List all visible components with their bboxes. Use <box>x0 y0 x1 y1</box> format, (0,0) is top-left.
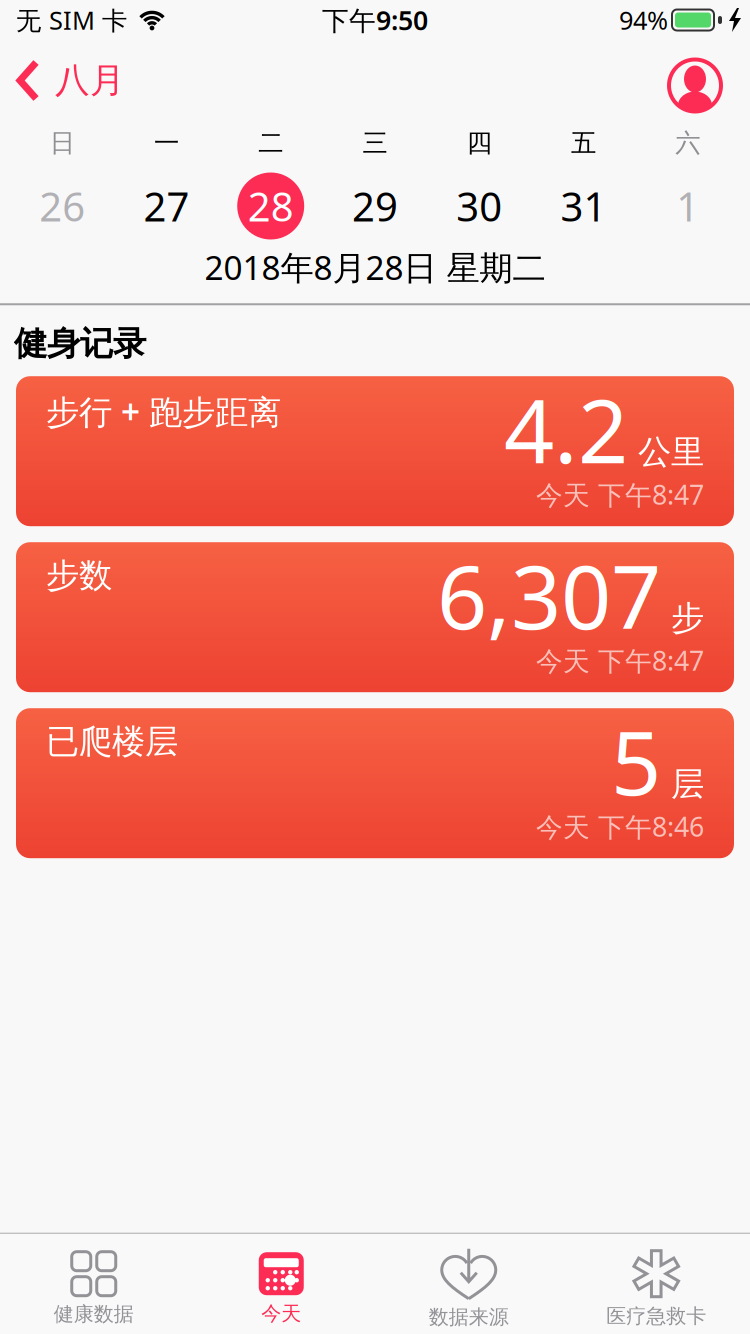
button[interactable]: 30 <box>427 173 531 239</box>
staticText: 28 <box>248 179 294 232</box>
button[interactable] <box>669 54 750 106</box>
staticText: 六 <box>675 127 700 158</box>
staticText: 6,307 <box>437 537 661 654</box>
staticText: 健康数据 <box>54 1302 134 1326</box>
staticText: 31 <box>561 179 607 232</box>
button[interactable]: 27 <box>114 173 219 239</box>
staticText: 日 <box>50 127 75 158</box>
staticText: 30 <box>456 179 502 232</box>
staticText: 今天 下午8:47 <box>536 643 704 678</box>
staticText: 今天 下午8:46 <box>536 809 704 844</box>
staticText: 健身记录 <box>14 323 146 364</box>
button[interactable]: 28 <box>219 173 323 239</box>
staticText: 1 <box>676 179 699 232</box>
button[interactable]: 健康数据 <box>0 1252 187 1326</box>
staticText: 步 <box>671 598 704 639</box>
staticText: 层 <box>671 764 704 805</box>
staticText: 数据来源 <box>429 1305 509 1329</box>
button[interactable]: 步数 <box>16 542 734 692</box>
staticText: 步数 <box>46 555 112 596</box>
staticText: 94% <box>619 3 668 37</box>
button[interactable]: 数据来源 <box>375 1249 562 1329</box>
button[interactable]: 1 <box>636 173 740 239</box>
staticText: 医疗急救卡 <box>606 1304 706 1328</box>
staticText: 步行 + 跑步距离 <box>46 389 281 433</box>
staticText: 二 <box>258 127 283 158</box>
staticText: 三 <box>362 127 387 158</box>
staticText: 今天 下午8:47 <box>536 477 704 512</box>
staticText: 下午9:50 <box>322 2 428 38</box>
staticText: 五 <box>571 127 596 158</box>
button[interactable]: 今天 <box>187 1252 375 1326</box>
staticText: 4.2 <box>504 371 628 488</box>
staticText: 四 <box>467 127 492 158</box>
staticText: 公里 <box>638 432 704 473</box>
staticText: 2018年8月28日 星期二 <box>204 245 545 289</box>
button[interactable]: 步行 + 跑步距离 <box>16 376 734 526</box>
staticText: 无 SIM 卡 <box>16 3 127 37</box>
button[interactable]: 八月 <box>0 59 125 102</box>
staticText: 27 <box>143 179 189 232</box>
staticText: 26 <box>39 179 85 232</box>
button[interactable]: 26 <box>10 173 114 239</box>
staticText: 八月 <box>55 59 125 102</box>
button[interactable]: 29 <box>323 173 427 239</box>
staticText: 5 <box>611 703 661 820</box>
staticText: 29 <box>352 179 398 232</box>
staticText: 一 <box>154 127 179 158</box>
button[interactable]: 已爬楼层 <box>16 708 734 858</box>
button[interactable]: 31 <box>531 173 636 239</box>
staticText: 已爬楼层 <box>46 721 178 762</box>
staticText: 今天 <box>261 1301 301 1326</box>
button[interactable]: 医疗急救卡 <box>562 1250 750 1328</box>
